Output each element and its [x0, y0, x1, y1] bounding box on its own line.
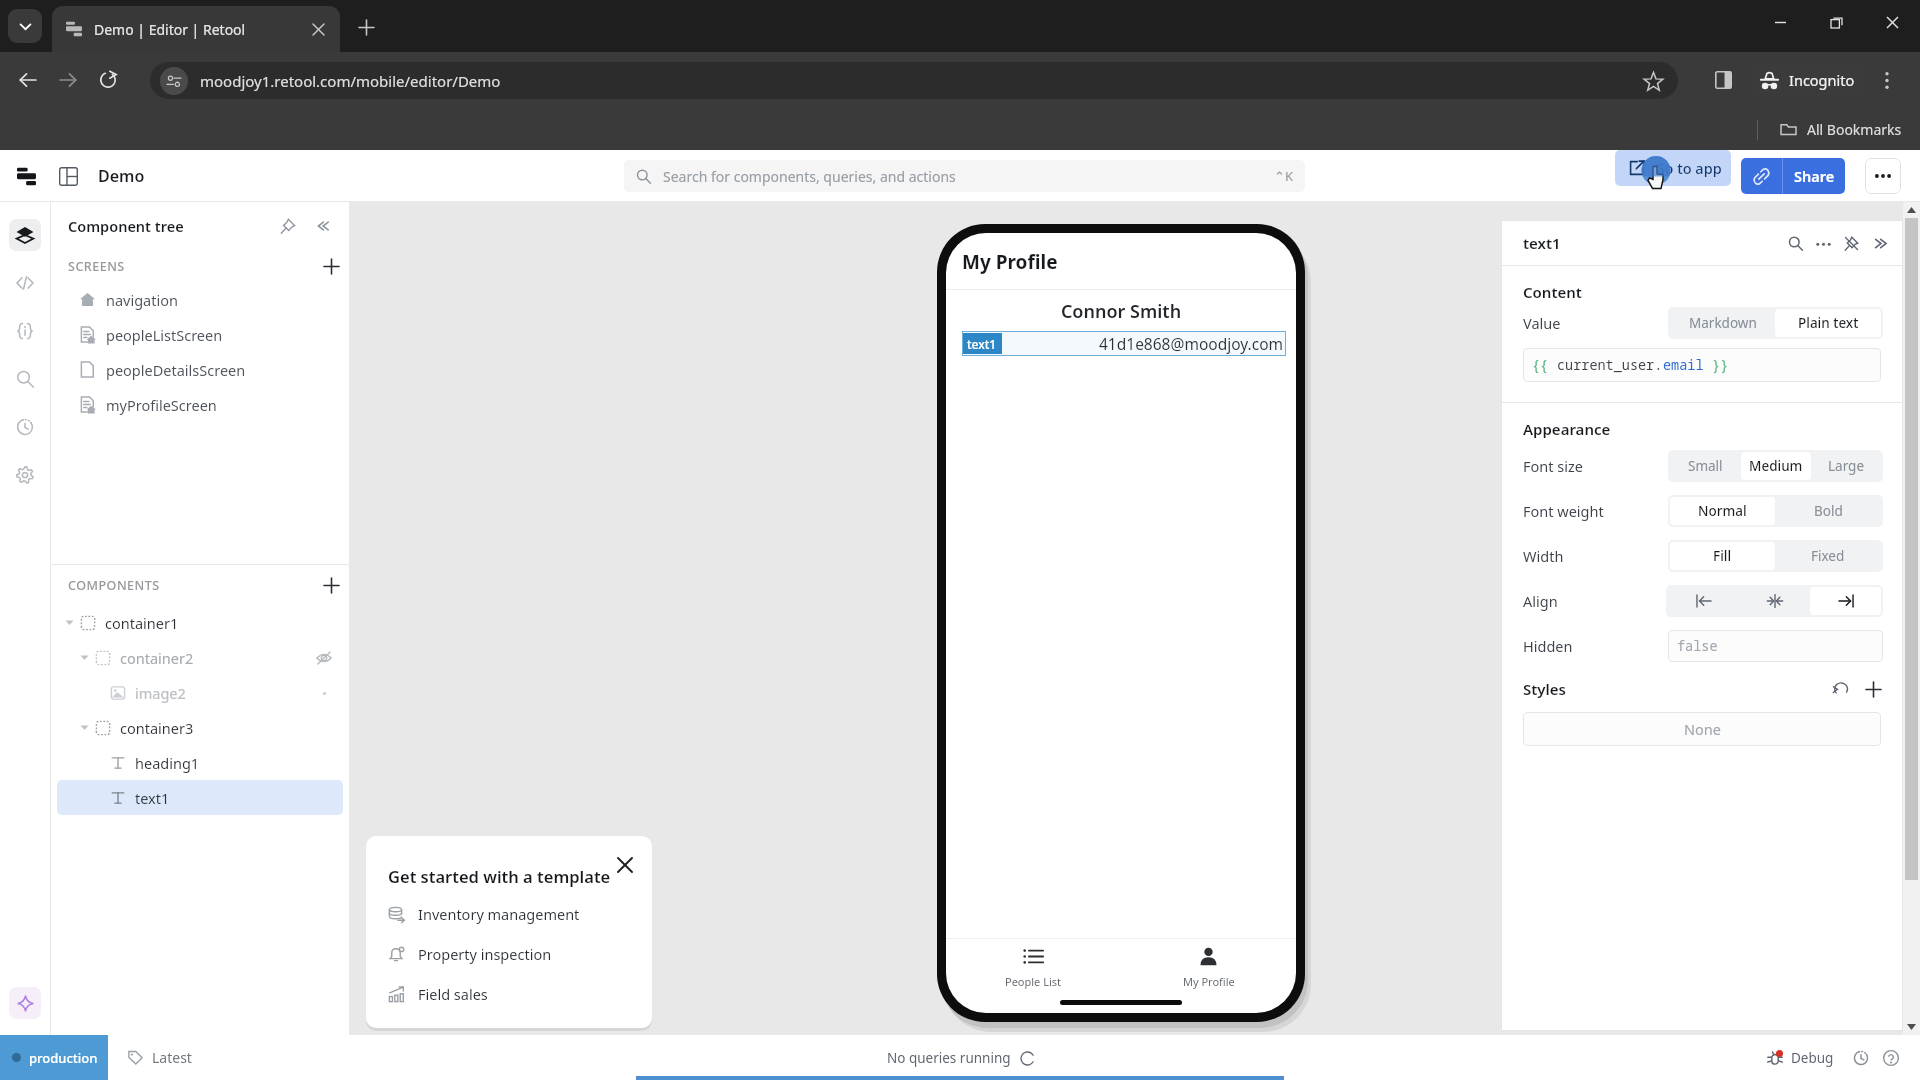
button[interactable]: image2 [57, 675, 343, 710]
button[interactable]: Reload [88, 60, 128, 100]
button[interactable]: Toggle panels [54, 162, 82, 190]
button[interactable]: Debug [1761, 1044, 1840, 1072]
button[interactable]: Add component [319, 573, 343, 597]
button[interactable]: More options [1865, 158, 1901, 194]
button[interactable]: History [9, 411, 41, 443]
staticText: Content [1523, 282, 1582, 302]
button[interactable]: Bold [1775, 497, 1881, 525]
button[interactable]: Large [1811, 452, 1881, 480]
button[interactable]: Fill [1670, 542, 1775, 570]
staticText: Font weight [1523, 501, 1604, 521]
button[interactable]: Pin panel [275, 213, 301, 239]
button[interactable]: Inventory management [388, 894, 638, 934]
staticText: container3 [120, 718, 194, 738]
staticText: navigation [106, 290, 178, 310]
button[interactable]: Retool home [12, 162, 40, 190]
button[interactable]: My Profile [1121, 940, 1296, 992]
button[interactable]: Property inspection [388, 934, 638, 974]
button[interactable]: Markdown [1670, 309, 1775, 337]
button[interactable]: container2 [57, 640, 343, 675]
button[interactable]: Search tabs [8, 9, 42, 43]
button[interactable]: People List [946, 940, 1121, 992]
button[interactable]: Minimize [1752, 0, 1808, 44]
button[interactable]: Demo | Editor | Retool [52, 6, 340, 52]
button[interactable]: Customize and control Chrome [1870, 63, 1904, 97]
button[interactable]: Forward [48, 60, 88, 100]
button[interactable]: Latest [122, 1043, 198, 1072]
staticText: image2 [135, 683, 186, 703]
staticText: current_user. [1557, 356, 1663, 374]
button[interactable]: Search for components, queries, and acti… [624, 160, 1305, 192]
button[interactable]: production [0, 1035, 108, 1080]
button[interactable]: navigation [57, 282, 343, 317]
button[interactable]: Field sales [388, 974, 638, 1014]
button[interactable]: Reset styles [1829, 677, 1853, 701]
button[interactable]: {{ [1523, 348, 1881, 382]
button[interactable]: text1 [57, 780, 343, 815]
staticText: Incognito [1789, 70, 1855, 90]
button[interactable]: false [1668, 630, 1883, 662]
button[interactable]: Align right [1810, 587, 1881, 615]
button[interactable]: Collapse panel [309, 213, 335, 239]
button[interactable]: Hidden [311, 645, 337, 671]
button[interactable]: Bookmark this tab [1638, 66, 1668, 96]
button[interactable]: Go to app [1615, 150, 1731, 186]
button[interactable]: Component tree [9, 219, 41, 251]
button[interactable]: Align left [1668, 587, 1739, 615]
button[interactable]: None [1523, 712, 1881, 746]
button[interactable]: Scroll down [1903, 1019, 1920, 1035]
button[interactable]: Collapse [1865, 229, 1893, 257]
button[interactable]: Back [8, 60, 48, 100]
button[interactable]: Plain text [1775, 309, 1881, 337]
button[interactable]: Search [1781, 229, 1809, 257]
button[interactable]: State [9, 315, 41, 347]
button[interactable]: Add screen [319, 254, 343, 278]
staticText: text1 [1523, 233, 1561, 253]
staticText: Styles [1523, 679, 1566, 699]
button[interactable]: Help [1878, 1045, 1904, 1071]
button[interactable]: Small [1670, 452, 1741, 480]
staticText: Align [1523, 591, 1558, 611]
button[interactable]: 41d1e868@moodjoy.com [962, 331, 1286, 356]
button[interactable]: container1 [57, 605, 343, 640]
staticText: Bold [1814, 502, 1843, 520]
button[interactable]: Settings [9, 459, 41, 491]
staticText: Fill [1713, 547, 1732, 565]
button[interactable]: peopleListScreen [57, 317, 343, 352]
staticText: email [1663, 356, 1704, 374]
button[interactable]: peopleDetailsScreen [57, 352, 343, 387]
staticText: container1 [105, 613, 179, 633]
staticText: text1 [135, 788, 170, 808]
button[interactable]: History [1848, 1045, 1874, 1071]
button[interactable]: Side panel [1706, 63, 1740, 97]
button[interactable]: Add style [1861, 677, 1885, 701]
button[interactable]: Unpin [1837, 229, 1865, 257]
staticText: Demo | Editor | Retool [94, 20, 246, 39]
staticText: {{ [1532, 356, 1557, 374]
button[interactable]: New tab [349, 10, 383, 44]
button[interactable]: Restore window [1808, 0, 1864, 44]
button[interactable]: heading1 [57, 745, 343, 780]
button[interactable]: Align center [1739, 587, 1810, 615]
staticText: peopleListScreen [106, 325, 223, 345]
button[interactable]: container3 [57, 710, 343, 745]
staticText: peopleDetailsScreen [106, 360, 246, 380]
button[interactable]: Medium [1741, 452, 1811, 480]
button[interactable]: Dismiss [612, 852, 638, 878]
button[interactable]: Retool AI [9, 987, 41, 1019]
button[interactable]: More [1809, 229, 1837, 257]
button[interactable]: Scroll up [1903, 202, 1920, 218]
button[interactable]: Close tab [304, 15, 332, 43]
button[interactable]: Incognito [1746, 62, 1868, 98]
button[interactable]: Code [9, 267, 41, 299]
button[interactable]: Fixed [1775, 542, 1881, 570]
button[interactable]: Close window [1864, 0, 1920, 44]
button[interactable]: Copy link [1741, 158, 1782, 194]
button[interactable]: Normal [1670, 497, 1775, 525]
staticText: Medium [1749, 457, 1803, 475]
button[interactable]: Share [1783, 158, 1845, 194]
button[interactable]: All Bookmarks [1774, 116, 1908, 143]
button[interactable]: Search [9, 363, 41, 395]
button[interactable]: myProfileScreen [57, 387, 343, 422]
button[interactable]: moodjoy1.retool.com/mobile/editor/Demo [150, 62, 1678, 99]
